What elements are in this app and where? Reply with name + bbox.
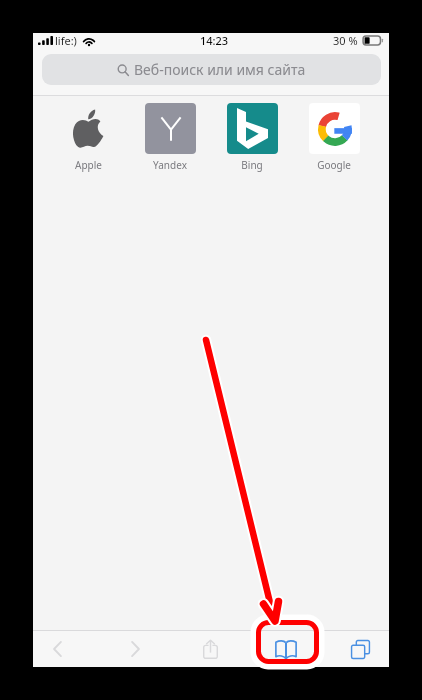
button[interactable]: Forward (112, 631, 158, 667)
button[interactable]: Share (187, 631, 233, 667)
staticText: Веб-поиск или имя сайта (134, 60, 306, 79)
staticText: Google (317, 158, 351, 172)
button[interactable]: Yandex (139, 103, 201, 172)
button[interactable]: Веб-поиск или имя сайта (42, 54, 381, 85)
staticText: Yandex (153, 158, 187, 172)
button[interactable]: Back (34, 631, 80, 667)
staticText: 30 % (333, 33, 358, 48)
staticText: life:) (55, 33, 77, 48)
button[interactable]: Bookmarks (263, 631, 309, 667)
staticText: Apple (75, 158, 102, 172)
button[interactable]: Apple (57, 103, 119, 172)
staticText: Bing (241, 158, 263, 172)
button[interactable]: Google (303, 103, 365, 172)
button[interactable]: Tabs (337, 631, 383, 667)
button[interactable]: Bing (221, 103, 283, 172)
staticText: 14:23 (200, 33, 229, 48)
